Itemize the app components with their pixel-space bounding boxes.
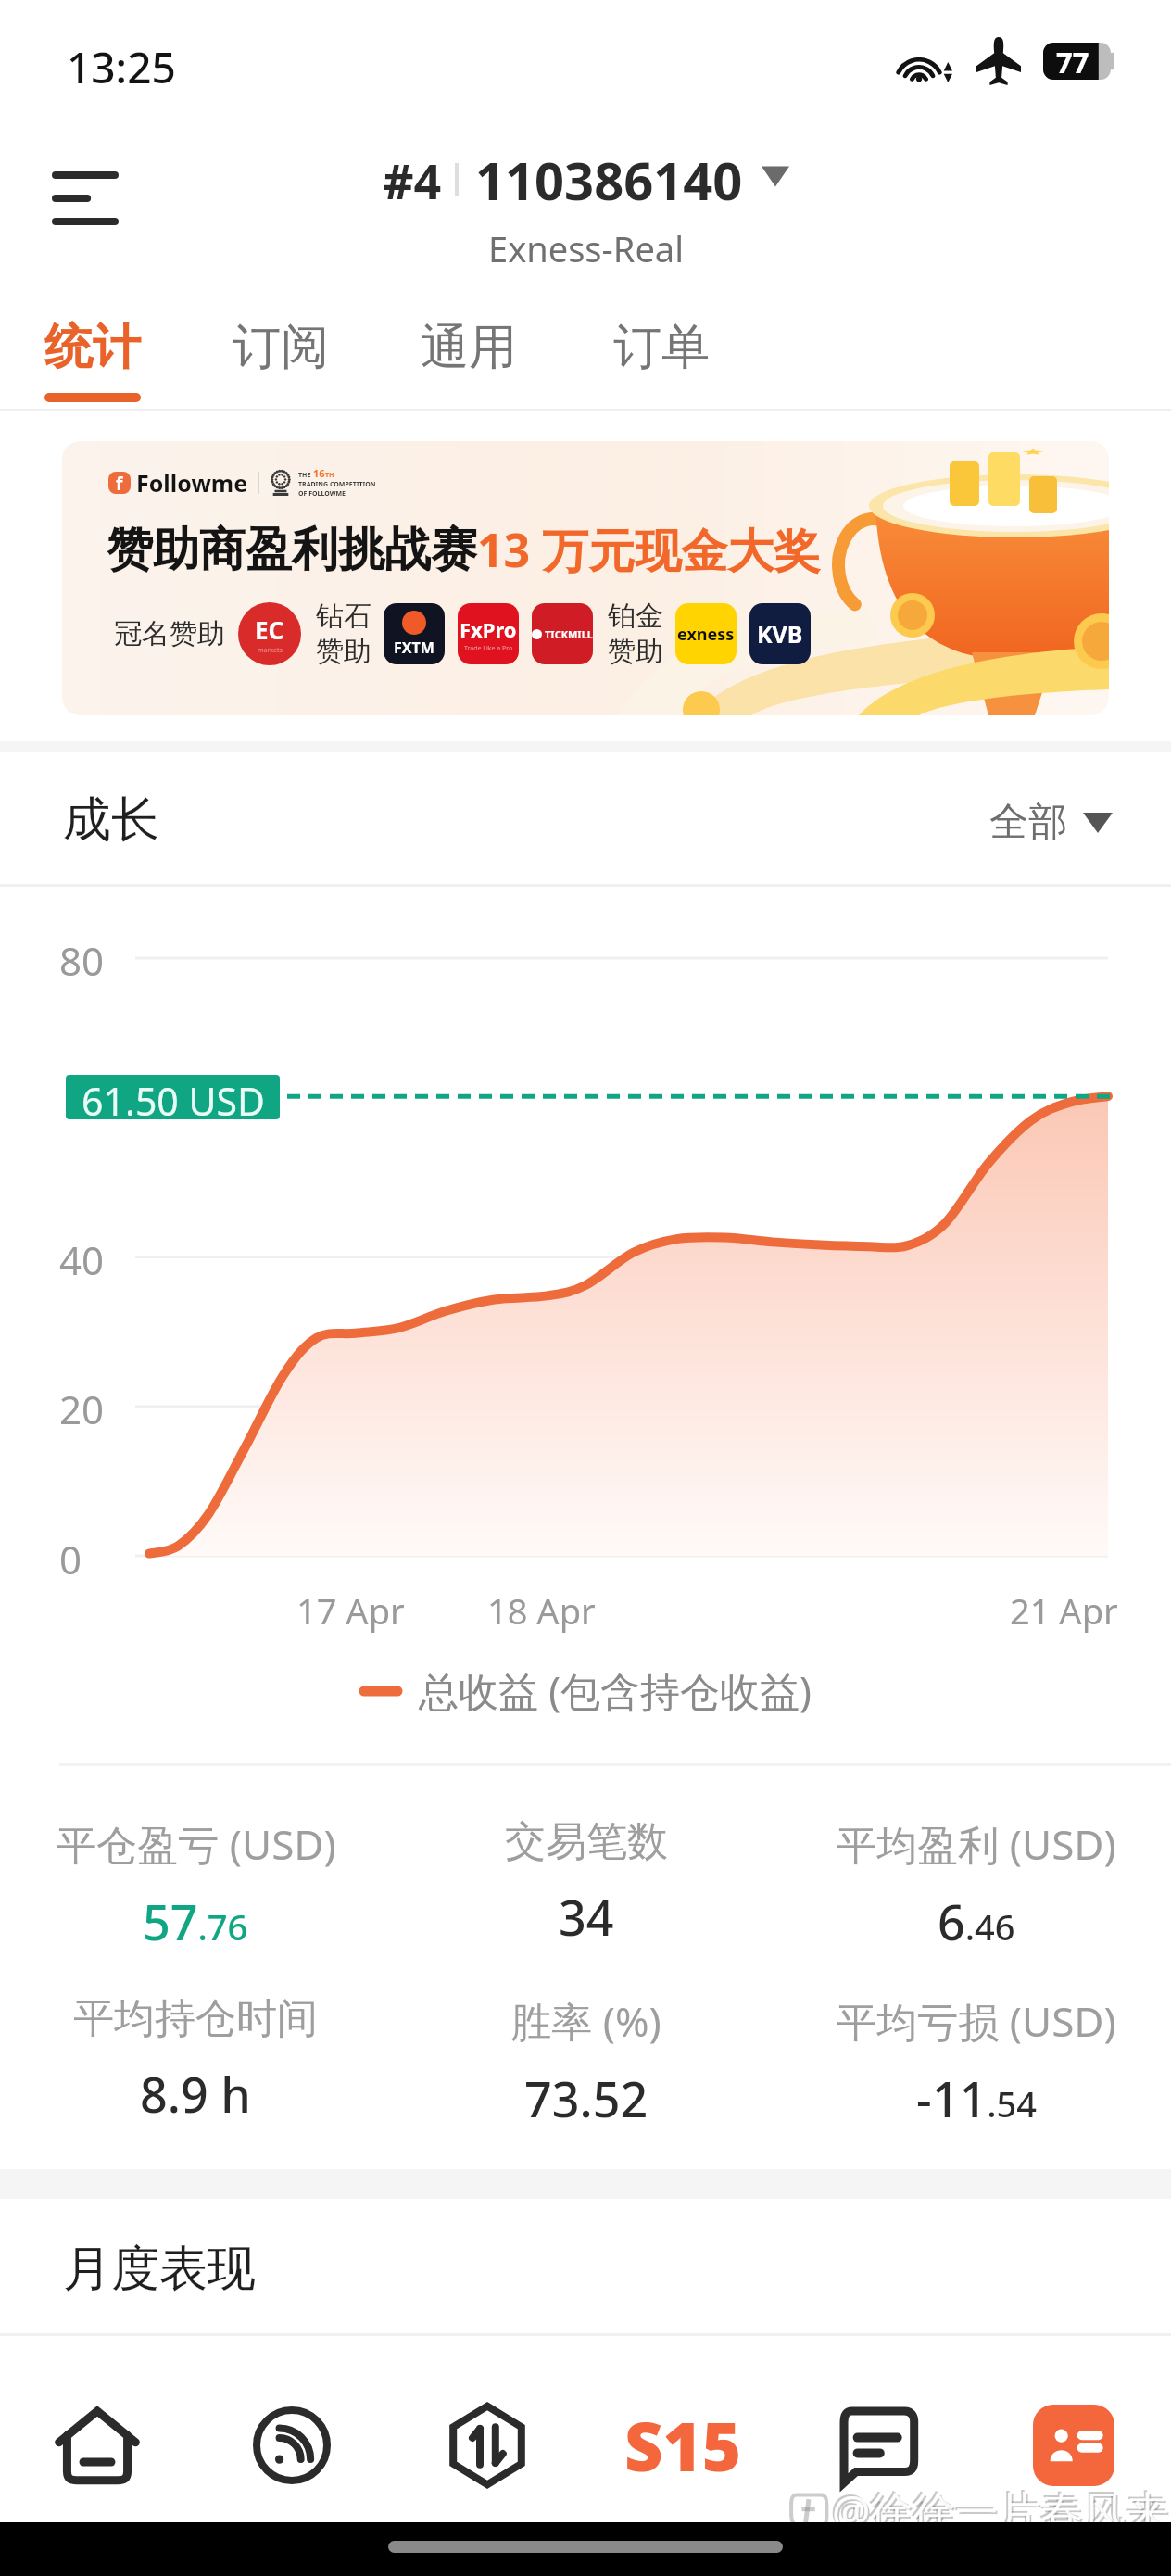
staticText: TRADING COMPETITION: [298, 480, 376, 489]
staticText: 订单: [613, 317, 710, 378]
staticText: 13 万元现金大奖: [477, 518, 821, 581]
staticText: @徐徐一片春风来: [830, 2480, 1167, 2538]
staticText: Trade Like a Pro: [464, 644, 513, 653]
staticText: S15: [624, 2400, 741, 2491]
staticText: 成长: [63, 789, 159, 851]
staticText: 冠名赞助: [114, 616, 225, 651]
staticText: 73.52: [524, 2065, 648, 2131]
staticText: @徐徐一片春风来: [832, 2481, 1169, 2540]
button[interactable]: Trade: [389, 2368, 585, 2522]
staticText: 赞助: [316, 634, 371, 669]
staticText: 赞助商盈利挑战赛: [107, 521, 477, 579]
staticText: 平均盈利 (USD): [836, 1816, 1116, 1872]
staticText: 6.46: [938, 1888, 1015, 1954]
staticText: 赞助: [608, 634, 663, 669]
button[interactable]: Competition S15: [585, 2368, 780, 2522]
staticText: 17 Apr: [296, 1586, 405, 1635]
staticText: 80: [59, 934, 105, 987]
staticText: TH: [325, 471, 334, 480]
staticText: 平均持仓时间: [73, 1993, 318, 2044]
staticText: markets: [258, 646, 283, 655]
button[interactable]: 通用: [417, 287, 521, 411]
staticText: 18 Apr: [487, 1586, 596, 1635]
staticText: 总收益 (包含持仓收益): [419, 1663, 812, 1718]
staticText: TICKMILL: [545, 627, 593, 641]
button[interactable]: Profile: [976, 2368, 1171, 2522]
button[interactable]: Menu: [43, 156, 128, 241]
staticText: 57.76: [143, 1888, 248, 1954]
staticText: KVB: [757, 618, 803, 650]
button[interactable]: 订单: [610, 287, 713, 411]
staticText: 13:25: [67, 38, 176, 96]
staticText: @徐徐一片春风来: [834, 2483, 1171, 2542]
button[interactable]: 全部: [989, 798, 1113, 847]
staticText: OF FOLLOWME: [298, 489, 346, 499]
button[interactable]: f: [62, 441, 1109, 715]
staticText: f: [116, 472, 123, 494]
staticText: 胜率 (%): [510, 1993, 661, 2049]
button[interactable]: Signals: [195, 2368, 389, 2522]
staticText: 0: [59, 1533, 82, 1585]
button[interactable]: Home: [0, 2368, 195, 2522]
staticText: THE: [298, 471, 313, 480]
staticText: 平均亏损 (USD): [836, 1993, 1116, 2049]
staticText: 16: [313, 466, 325, 480]
button[interactable]: Messages: [780, 2368, 976, 2522]
staticText: 统计: [44, 317, 141, 378]
button[interactable]: #4: [371, 145, 800, 272]
staticText: 40: [59, 1233, 105, 1286]
staticText: 77: [1056, 43, 1089, 80]
staticText: exness: [677, 623, 735, 646]
staticText: -11.54: [916, 2065, 1037, 2131]
staticText: 交易笔数: [505, 1816, 668, 1867]
staticText: 110386140: [475, 145, 743, 215]
staticText: EC: [255, 613, 284, 646]
staticText: 订阅: [233, 317, 329, 378]
staticText: 21 Apr: [1010, 1586, 1118, 1635]
button[interactable]: 统计: [41, 287, 145, 411]
staticText: Exness-Real: [488, 224, 684, 272]
staticText: 全部: [989, 798, 1067, 847]
staticText: 34: [559, 1884, 614, 1950]
staticText: Followme: [136, 467, 248, 499]
staticText: 61.50 USD: [82, 1075, 265, 1119]
staticText: 铂金: [608, 599, 663, 634]
staticText: 钻石: [316, 599, 371, 634]
staticText: 月度表现: [63, 2239, 256, 2300]
staticText: 20: [59, 1383, 105, 1435]
staticText: FxPro: [460, 615, 517, 643]
staticText: 8.9 h: [140, 2061, 251, 2127]
staticText: #4: [383, 147, 442, 213]
staticText: 通用: [421, 317, 517, 378]
staticText: 平仓盈亏 (USD): [56, 1816, 336, 1872]
staticText: FXTM: [394, 638, 434, 658]
button[interactable]: 订阅: [229, 287, 333, 411]
